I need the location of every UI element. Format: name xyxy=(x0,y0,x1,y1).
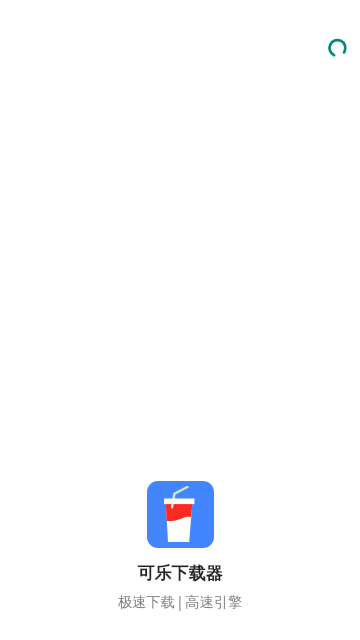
button[interactable]: 可乐下载器 app icon xyxy=(147,481,214,548)
staticText: 可乐下载器 xyxy=(0,563,360,584)
staticText: 极速下载 | 高速引擎 xyxy=(0,592,360,611)
button[interactable]: Loading xyxy=(325,36,349,60)
